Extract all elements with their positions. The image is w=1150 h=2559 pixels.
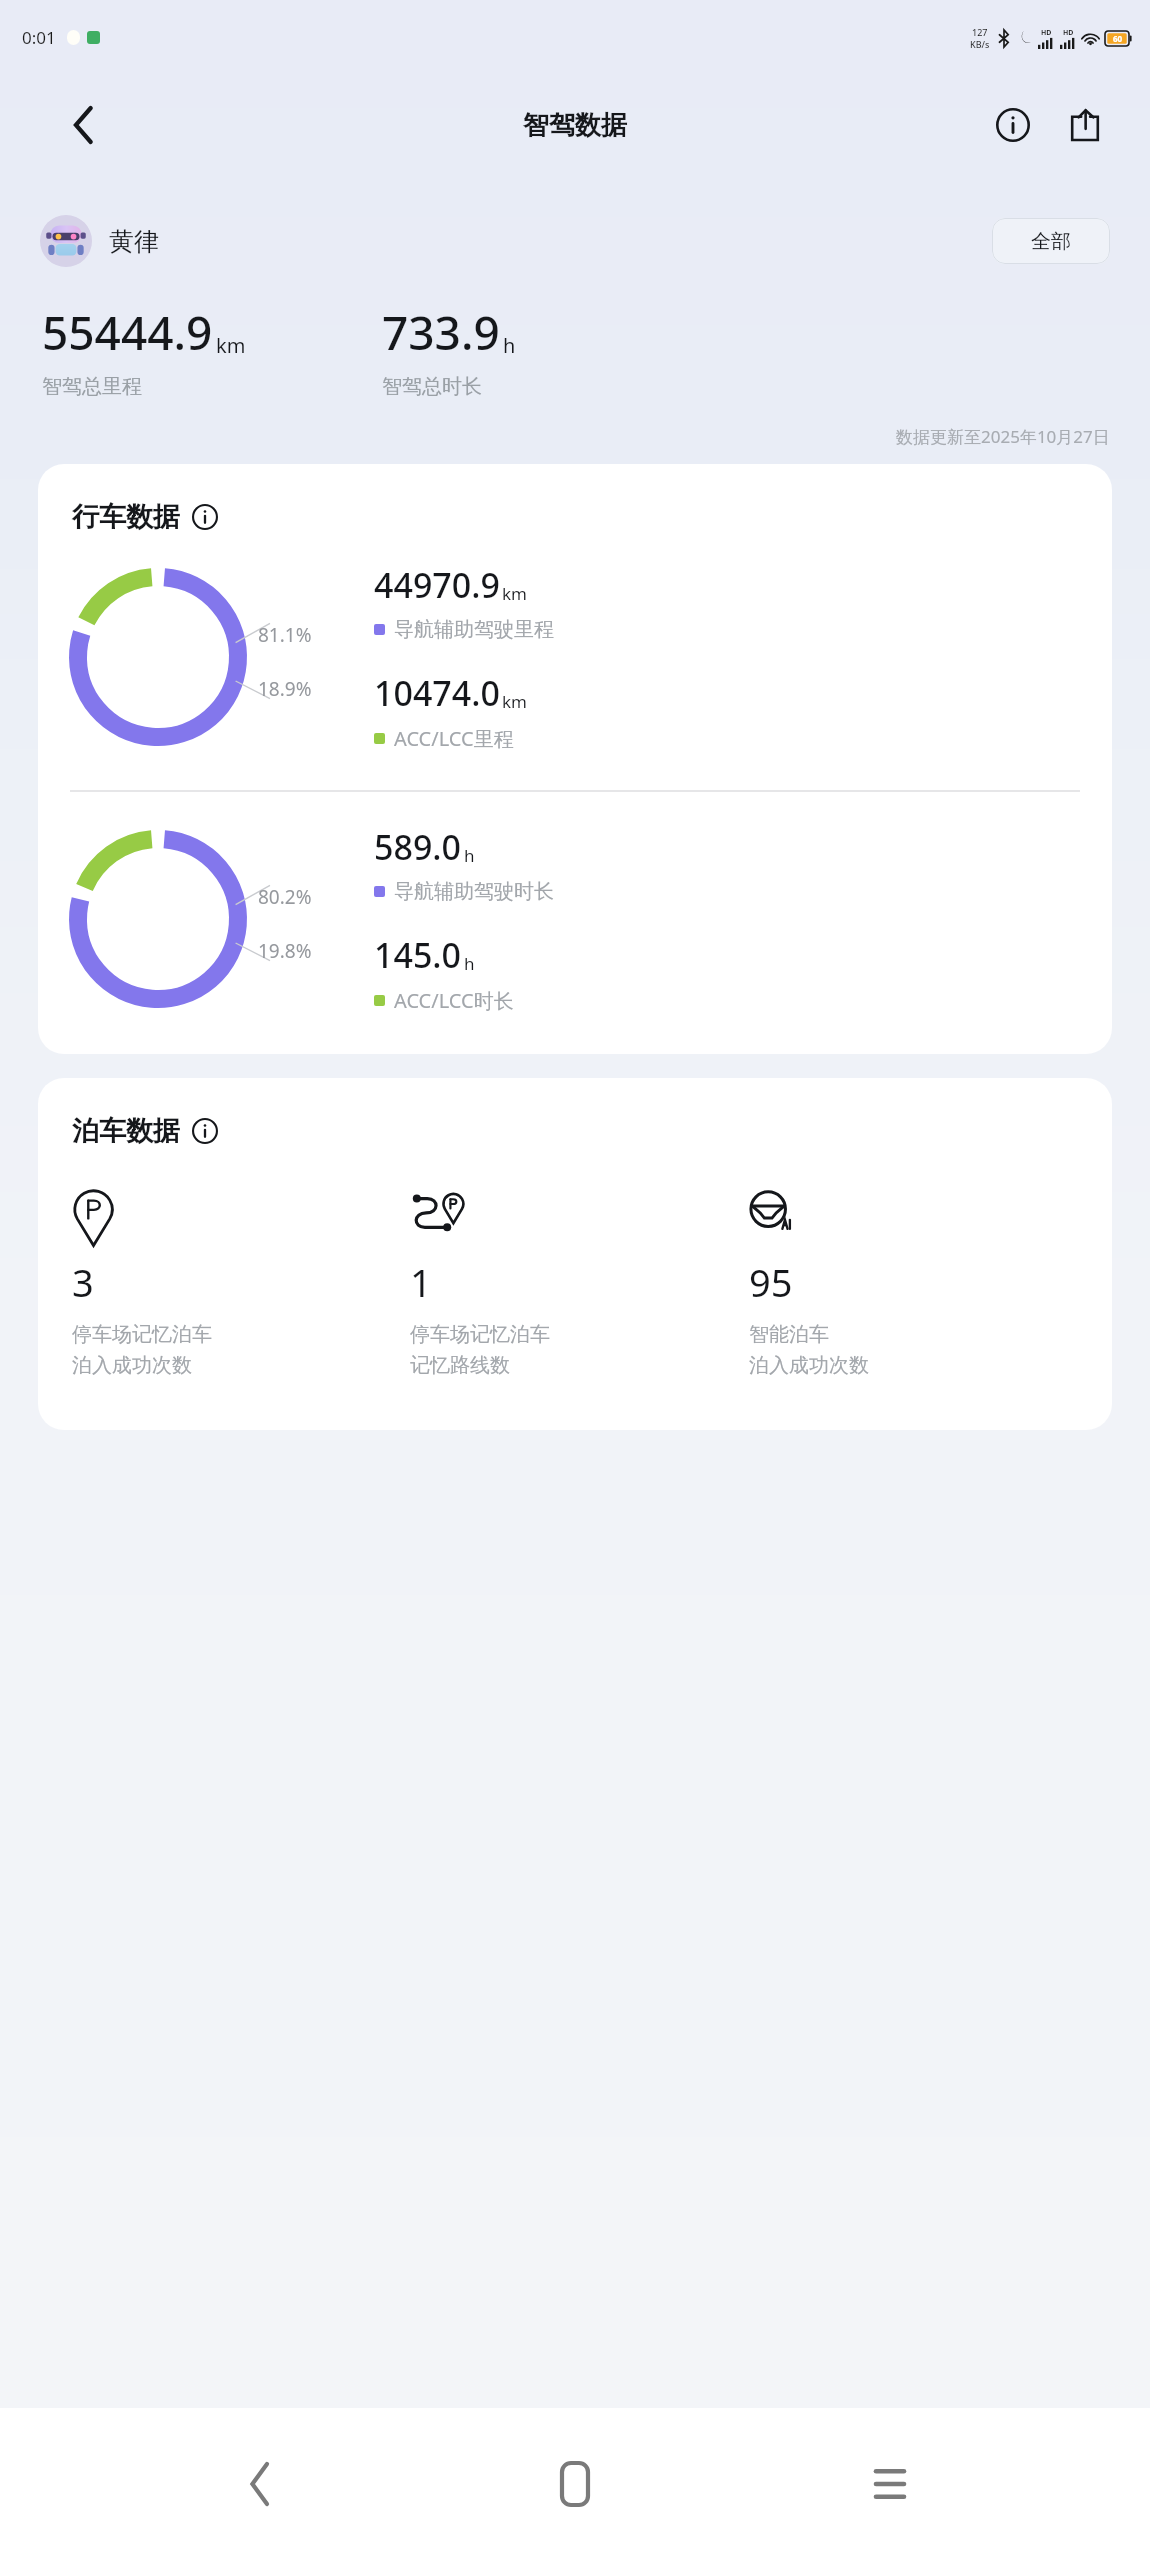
button[interactable]: 停车场记忆泊车 — [410, 1188, 749, 1378]
button[interactable]: Back — [56, 98, 110, 152]
staticText: 记忆路线数 — [410, 1353, 510, 1378]
staticText: km — [502, 690, 527, 713]
staticText: 145.0 — [374, 932, 462, 978]
staticText: 0:01 — [22, 26, 56, 49]
staticText: 导航辅助驾驶里程 — [394, 617, 554, 642]
button[interactable]: 行车数据 — [38, 464, 1112, 1054]
staticText: 泊车数据 — [72, 1114, 180, 1148]
staticText: h — [464, 952, 475, 975]
staticText: 95 — [749, 1256, 793, 1308]
button[interactable]: Share — [1058, 98, 1112, 152]
button[interactable]: 智能泊车 — [749, 1188, 1088, 1378]
button[interactable]: 行车数据 — [72, 500, 218, 534]
button[interactable]: 停车场记忆泊车 — [72, 1188, 410, 1378]
button[interactable]: Recents — [835, 2439, 945, 2529]
button[interactable]: 泊车数据 — [38, 1078, 1112, 1430]
staticText: 智驾总里程 — [42, 374, 142, 399]
button[interactable]: Home — [520, 2439, 630, 2529]
button[interactable]: 黄律 — [40, 215, 159, 267]
staticText: km — [216, 332, 246, 359]
other: 智能泊车 — [749, 1188, 797, 1236]
button[interactable]: 全部 — [992, 218, 1110, 264]
staticText: 55444.9 — [42, 301, 213, 364]
staticText: 停车场记忆泊车 — [410, 1322, 550, 1347]
staticText: 泊入成功次数 — [749, 1353, 869, 1378]
staticText: ACC/LCC里程 — [394, 725, 514, 752]
staticText: 60 — [1113, 33, 1123, 44]
staticText: 18.9% — [258, 676, 312, 702]
staticText: 数据更新至2025年10月27日 — [896, 425, 1110, 448]
other: 停车场记忆泊车 — [410, 1188, 472, 1236]
staticText: 127 — [972, 26, 988, 38]
staticText: h — [464, 844, 475, 867]
button[interactable]: 泊车数据 — [72, 1114, 218, 1148]
staticText: 19.8% — [258, 938, 312, 964]
staticText: KB/s — [970, 38, 990, 50]
staticText: 智驾数据 — [523, 109, 627, 142]
staticText: h — [503, 332, 516, 359]
staticText: km — [502, 582, 527, 605]
staticText: 44970.9 — [374, 562, 500, 608]
staticText: 智能泊车 — [749, 1322, 829, 1347]
staticText: 10474.0 — [374, 670, 500, 716]
staticText: 589.0 — [374, 824, 462, 870]
staticText: 行车数据 — [72, 500, 180, 534]
staticText: 黄律 — [109, 226, 159, 257]
button[interactable]: Back — [205, 2439, 315, 2529]
staticText: 1 — [410, 1256, 432, 1308]
staticText: 泊入成功次数 — [72, 1353, 192, 1378]
staticText: 导航辅助驾驶时长 — [394, 879, 554, 904]
staticText: 733.9 — [382, 301, 500, 364]
staticText: 80.2% — [258, 884, 312, 910]
staticText: 3 — [72, 1256, 94, 1308]
staticText: 智驾总时长 — [382, 374, 482, 399]
other: 停车场记忆泊车 — [72, 1188, 120, 1236]
staticText: 全部 — [1031, 229, 1071, 254]
staticText: HD — [1041, 28, 1052, 38]
staticText: HD — [1063, 28, 1074, 38]
staticText: 停车场记忆泊车 — [72, 1322, 212, 1347]
button[interactable]: Info — [986, 98, 1040, 152]
staticText: ACC/LCC时长 — [394, 987, 514, 1014]
staticText: 81.1% — [258, 622, 312, 648]
